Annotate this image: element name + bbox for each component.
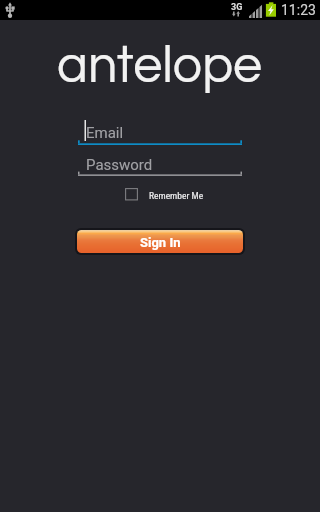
staticText: Remember Me <box>149 190 204 201</box>
staticText: 11:23 <box>281 2 316 18</box>
button[interactable]: Email <box>78 117 242 149</box>
staticText: Email <box>86 124 124 142</box>
button[interactable]: Password <box>78 148 242 180</box>
staticText: Sign In <box>140 235 181 250</box>
staticText: antelope <box>57 39 263 93</box>
button[interactable]: Remember Me <box>125 186 204 202</box>
staticText: Password <box>86 156 153 174</box>
staticText: 3G <box>231 2 243 13</box>
button[interactable]: Sign In <box>77 230 243 253</box>
